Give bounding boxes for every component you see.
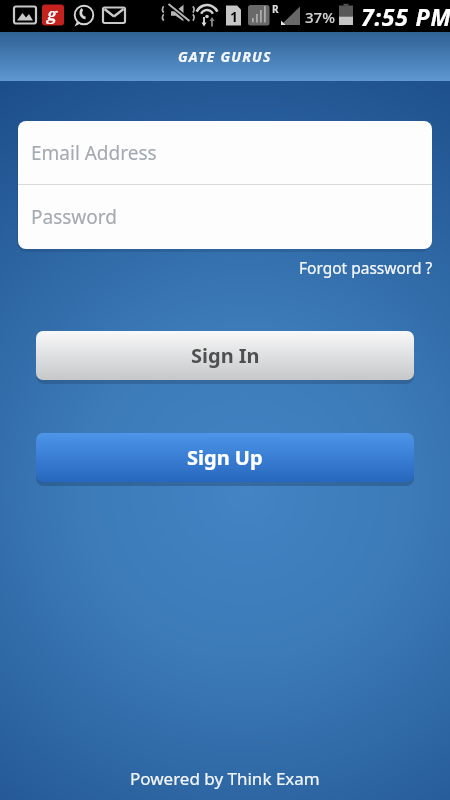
staticText: Powered by Think Exam [130,767,320,790]
staticText: R [272,2,279,16]
staticText: 7:55 PM [361,1,450,32]
staticText: Password [31,204,117,230]
button[interactable]: Email Address [18,121,432,184]
button[interactable]: Sign In [36,331,414,380]
staticText: Sign In [191,342,260,369]
staticText: GATE GURUS [178,47,272,66]
staticText: 1 [230,7,239,26]
button[interactable]: Sign Up [36,433,414,482]
button[interactable]: Forgot password ? [299,257,433,278]
staticText: Email Address [31,140,157,166]
staticText: g [47,2,57,25]
staticText: 37% [305,7,335,27]
button[interactable]: Password [18,185,432,249]
staticText: Sign Up [187,444,263,471]
